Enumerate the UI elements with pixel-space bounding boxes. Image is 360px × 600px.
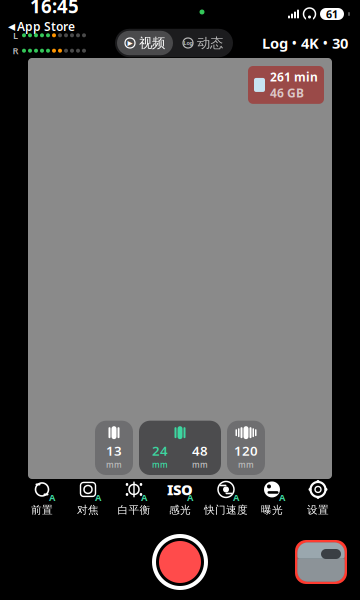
- staticText: A: [141, 491, 147, 504]
- staticText: 120: [234, 442, 258, 459]
- staticText: ISO: [167, 480, 193, 499]
- staticText: 16:45: [30, 0, 79, 18]
- staticText: •: [292, 35, 297, 51]
- staticText: 曝光: [261, 503, 283, 516]
- staticText: A: [187, 491, 193, 504]
- staticText: mm: [152, 459, 168, 470]
- button[interactable]: 设置: [295, 477, 341, 518]
- staticText: •: [323, 35, 328, 51]
- staticText: 261 min: [270, 69, 318, 85]
- button[interactable]: Log: [262, 33, 360, 53]
- staticText: 白平衡: [117, 503, 150, 516]
- button[interactable]: A: [19, 477, 65, 518]
- staticText: 24: [152, 442, 168, 459]
- button[interactable]: 24: [139, 421, 221, 475]
- staticText: L: [13, 29, 18, 41]
- staticText: 设置: [307, 503, 329, 516]
- staticText: 46 GB: [270, 85, 304, 101]
- staticText: 感光: [169, 503, 191, 516]
- staticText: 动态: [197, 35, 223, 51]
- staticText: mm: [192, 459, 208, 470]
- button[interactable]: 120: [227, 421, 265, 475]
- button[interactable]: A: [203, 477, 249, 518]
- staticText: mm: [238, 459, 254, 470]
- staticText: ◀: [8, 21, 15, 32]
- button[interactable]: Record: [151, 533, 209, 591]
- button[interactable]: 13: [95, 421, 133, 475]
- staticText: R: [12, 44, 18, 57]
- staticText: A: [95, 491, 101, 504]
- staticText: 对焦: [77, 503, 99, 516]
- button[interactable]: ▶: [117, 31, 173, 55]
- staticText: Log: [183, 39, 192, 47]
- button[interactable]: Log: [175, 31, 231, 55]
- button[interactable]: ISO: [157, 477, 203, 518]
- staticText: 4K: [301, 33, 319, 53]
- staticText: 视频: [139, 35, 165, 51]
- button[interactable]: A: [249, 477, 295, 518]
- staticText: 30: [332, 33, 348, 53]
- staticText: App Store: [17, 18, 75, 34]
- staticText: 13: [106, 442, 122, 459]
- button[interactable]: A: [65, 477, 111, 518]
- staticText: 快门速度: [204, 503, 248, 516]
- staticText: Log: [262, 33, 288, 53]
- staticText: 前置: [31, 503, 53, 516]
- staticText: 48: [192, 442, 208, 459]
- staticText: A: [279, 491, 285, 504]
- button[interactable]: Library: [294, 539, 348, 585]
- staticText: A: [49, 491, 55, 504]
- staticText: ▶: [127, 39, 132, 47]
- staticText: mm: [106, 459, 122, 470]
- staticText: A: [233, 491, 239, 504]
- staticText: 61: [326, 7, 338, 21]
- button[interactable]: A: [111, 477, 157, 518]
